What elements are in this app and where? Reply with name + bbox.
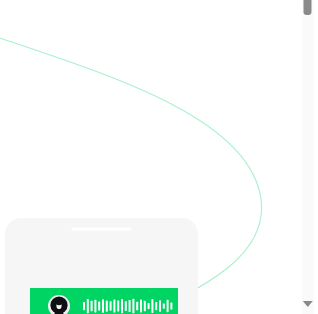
other: Scroll bar bbox=[0, 0, 318, 314]
button[interactable]: Now playing voice message bbox=[0, 0, 318, 314]
button[interactable] bbox=[0, 0, 318, 314]
